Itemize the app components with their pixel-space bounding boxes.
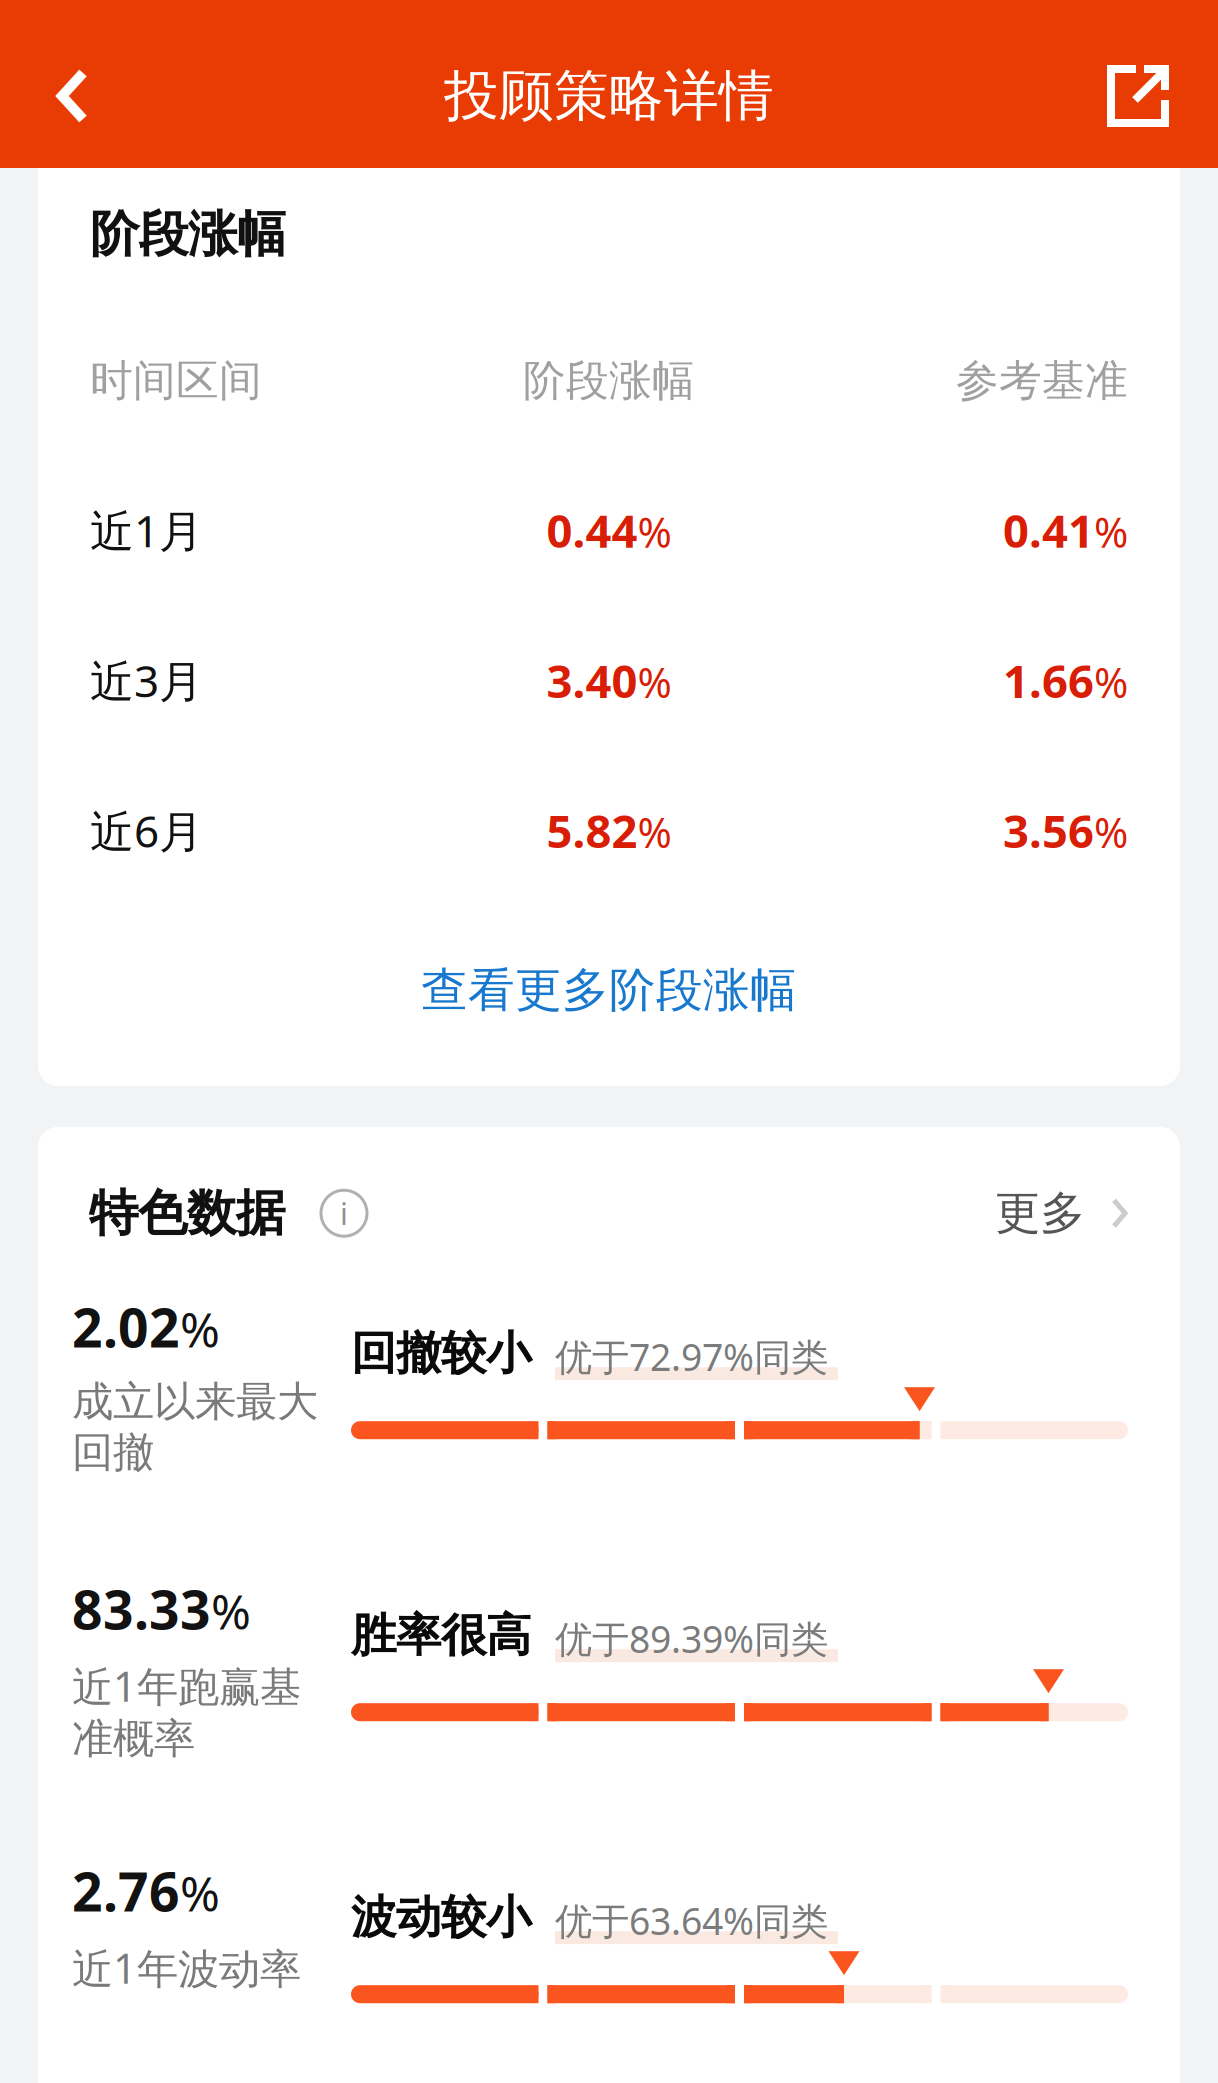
staticText: 参考基准	[956, 355, 1128, 407]
staticText: %	[637, 504, 671, 559]
staticText: 2.02	[72, 1291, 180, 1362]
staticText: %	[211, 1579, 251, 1643]
staticText: 回撤较小	[351, 1325, 531, 1381]
staticText: 更多	[995, 1185, 1085, 1241]
staticText: 时间区间	[90, 355, 262, 407]
staticText: 特色数据	[89, 1183, 285, 1243]
staticText: %	[637, 654, 671, 709]
staticText: 近1年跑赢基准概率	[72, 1658, 301, 1764]
staticText: 近3月	[90, 651, 203, 709]
staticText: %	[180, 1297, 220, 1361]
staticText: 波动较小	[351, 1889, 531, 1945]
staticText: 阶段涨幅	[523, 355, 695, 407]
staticText: 优于63.64%同类	[555, 1896, 828, 1945]
button[interactable]: 返回	[0, 48, 132, 144]
button[interactable]: 查看更多阶段涨幅	[90, 944, 1128, 1037]
button[interactable]: 分享	[1062, 48, 1218, 144]
staticText: 0.44	[546, 500, 637, 560]
staticText: %	[1094, 805, 1128, 859]
staticText: 投顾策略详情	[444, 62, 774, 129]
staticText: 3.56	[1003, 800, 1094, 861]
staticText: i	[340, 1193, 348, 1234]
staticText: 5.82	[546, 800, 637, 861]
staticText: 1.66	[1003, 650, 1094, 710]
staticText: 优于89.39%同类	[555, 1614, 828, 1663]
staticText: %	[1094, 654, 1128, 709]
staticText: 3.40	[546, 650, 637, 710]
staticText: 优于72.97%同类	[555, 1332, 828, 1381]
staticText: 查看更多阶段涨幅	[421, 962, 797, 1019]
staticText: 成立以来最大回撤	[72, 1376, 318, 1478]
staticText: 2.76	[72, 1855, 180, 1926]
staticText: 近1年波动率	[72, 1940, 301, 1995]
staticText: %	[1094, 504, 1128, 559]
staticText: 近6月	[90, 801, 203, 860]
staticText: 0.41	[1003, 500, 1094, 560]
staticText: %	[180, 1861, 220, 1925]
staticText: %	[637, 805, 671, 859]
staticText: 阶段涨幅	[90, 204, 286, 265]
staticText: 近1月	[90, 501, 203, 559]
button[interactable]: 更多	[995, 1185, 1128, 1241]
staticText: 83.33	[72, 1573, 211, 1644]
staticText: 胜率很高	[351, 1607, 531, 1663]
